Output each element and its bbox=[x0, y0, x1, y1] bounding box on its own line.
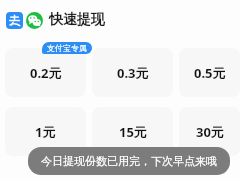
staticText: 1元 bbox=[35, 123, 56, 141]
button[interactable]: 0.2元 bbox=[5, 48, 86, 97]
button[interactable]: 0.3元 bbox=[92, 48, 173, 97]
staticText: 支付宝专属 bbox=[47, 43, 87, 53]
staticText: 15元 bbox=[119, 123, 147, 141]
button[interactable]: 15元 bbox=[92, 107, 173, 156]
button[interactable]: 1元 bbox=[5, 107, 86, 156]
button[interactable]: 30元 bbox=[179, 107, 240, 156]
button[interactable]: 微信 bbox=[26, 12, 43, 29]
staticText: 0.5元 bbox=[194, 64, 226, 82]
staticText: 0.2元 bbox=[30, 64, 62, 82]
button[interactable]: 支付宝 bbox=[6, 12, 23, 29]
button[interactable]: 0.5元 bbox=[179, 48, 240, 97]
staticText: 快速提现 bbox=[49, 11, 105, 29]
staticText: 今日提现份数已用完，下次早点来哦 bbox=[41, 154, 217, 168]
staticText: 0.3元 bbox=[117, 64, 149, 82]
staticText: 30元 bbox=[196, 123, 224, 141]
